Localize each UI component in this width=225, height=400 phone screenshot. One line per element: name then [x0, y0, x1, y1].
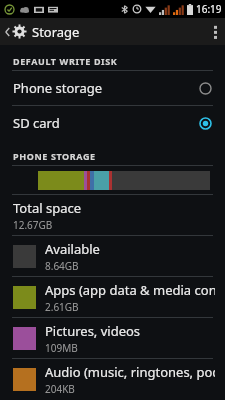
button[interactable]: Navigate up	[0, 20, 33, 43]
staticText: Phone storage	[13, 79, 199, 97]
button[interactable]: Apps (app data & media content)	[0, 277, 225, 317]
staticText: DEFAULT WRITE DISK	[13, 55, 118, 67]
staticText: 109MB	[45, 341, 78, 355]
staticText: 204KB	[45, 382, 75, 396]
staticText: Pictures, videos	[45, 322, 141, 340]
staticText: PHONE STORAGE	[13, 150, 96, 162]
button[interactable]: Phone storage	[0, 71, 225, 105]
staticText: 8.64GB	[45, 259, 79, 273]
staticText: 16:19	[196, 2, 222, 16]
button[interactable]: More options	[206, 21, 225, 43]
button[interactable]: SD card	[0, 106, 225, 140]
button[interactable]: Pictures, videos	[0, 318, 225, 358]
staticText: Available	[45, 240, 100, 258]
staticText: Audio (music, ringtones, podcasts)	[45, 363, 215, 381]
button[interactable]: Audio (music, ringtones, podcasts)	[0, 359, 225, 399]
staticText: 12.67GB	[13, 218, 53, 232]
staticText: Total space	[13, 199, 81, 217]
button[interactable]: Total space	[0, 195, 225, 235]
button[interactable]: Available	[0, 236, 225, 276]
staticText: SD card	[13, 114, 199, 132]
staticText: Apps (app data & media content)	[45, 281, 215, 299]
staticText: 2.61GB	[45, 300, 79, 314]
staticText: Storage	[32, 23, 80, 41]
